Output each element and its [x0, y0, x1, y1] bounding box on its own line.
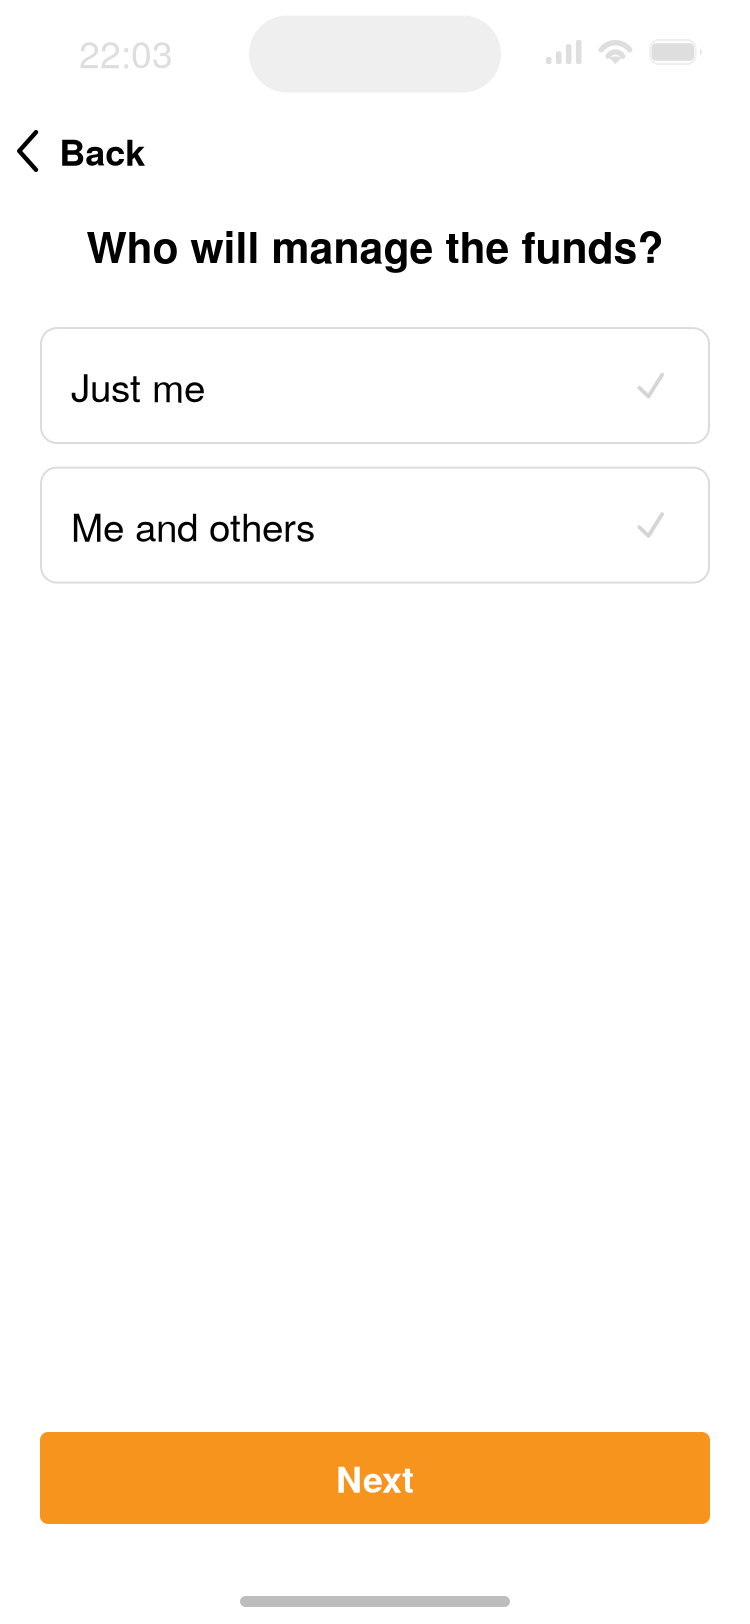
staticText: Who will manage the funds? — [86, 215, 663, 276]
button[interactable]: Just me — [40, 327, 710, 444]
staticText: 22:03 — [79, 25, 173, 79]
staticText: Next — [336, 1452, 414, 1504]
button[interactable]: Me and others — [40, 467, 710, 584]
staticText: Just me — [71, 358, 205, 413]
button[interactable]: Back — [0, 114, 169, 188]
button[interactable]: Next — [40, 1432, 710, 1524]
staticText: Me and others — [71, 497, 315, 553]
staticText: Back — [59, 125, 145, 177]
